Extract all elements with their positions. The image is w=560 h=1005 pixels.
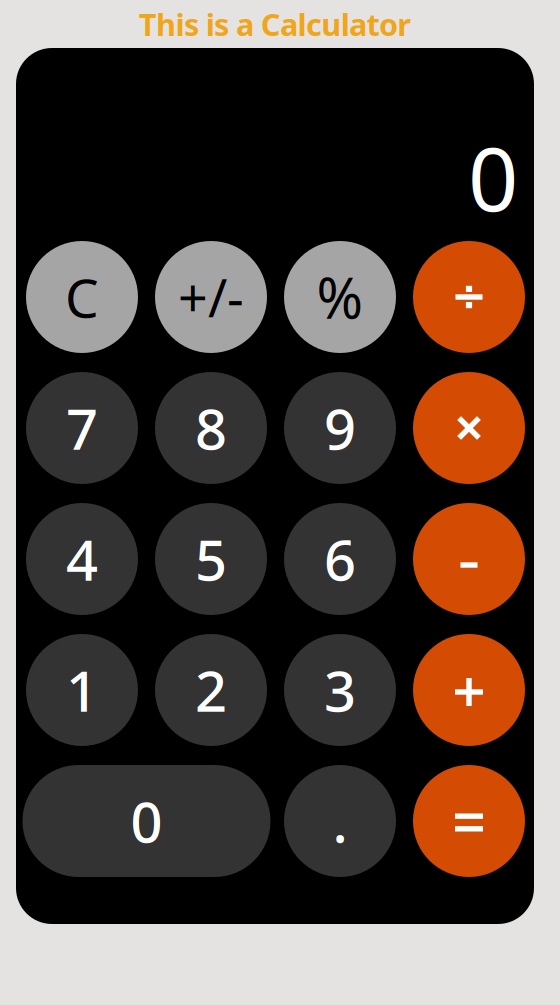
button[interactable]: . [284, 765, 396, 877]
staticText: 4 [66, 522, 98, 596]
staticText: 5 [195, 522, 227, 596]
button[interactable]: 8 [155, 372, 267, 484]
staticText: 0 [468, 119, 518, 235]
staticText: 7 [66, 391, 98, 465]
button[interactable]: Multiply [413, 372, 525, 484]
staticText: 1 [66, 653, 98, 727]
button[interactable]: Plus minus [155, 241, 267, 353]
button[interactable]: 3 [284, 634, 396, 746]
button[interactable]: 0 [26, 765, 267, 877]
staticText: 2 [195, 653, 227, 727]
staticText: 8 [195, 391, 227, 465]
staticText: 0 [130, 784, 162, 858]
button[interactable]: Equals [413, 765, 525, 877]
button[interactable]: Divide [413, 241, 525, 353]
staticText: 6 [324, 522, 356, 596]
button[interactable]: 5 [155, 503, 267, 615]
staticText: This is a Calculator [139, 4, 411, 44]
button[interactable]: 9 [284, 372, 396, 484]
button[interactable]: 4 [26, 503, 138, 615]
button[interactable]: 1 [26, 634, 138, 746]
staticText: 9 [324, 391, 356, 465]
button[interactable]: Clear [26, 241, 138, 353]
button[interactable]: 7 [26, 372, 138, 484]
button[interactable]: 6 [284, 503, 396, 615]
button[interactable]: 2 [155, 634, 267, 746]
button[interactable]: Plus [413, 634, 525, 746]
button[interactable]: Percent [284, 241, 396, 353]
staticText: C [65, 262, 99, 332]
staticText: % [316, 260, 363, 334]
staticText: . [332, 784, 347, 858]
staticText: 3 [324, 653, 356, 727]
staticText: +/- [178, 262, 244, 332]
button[interactable]: Minus [413, 503, 525, 615]
